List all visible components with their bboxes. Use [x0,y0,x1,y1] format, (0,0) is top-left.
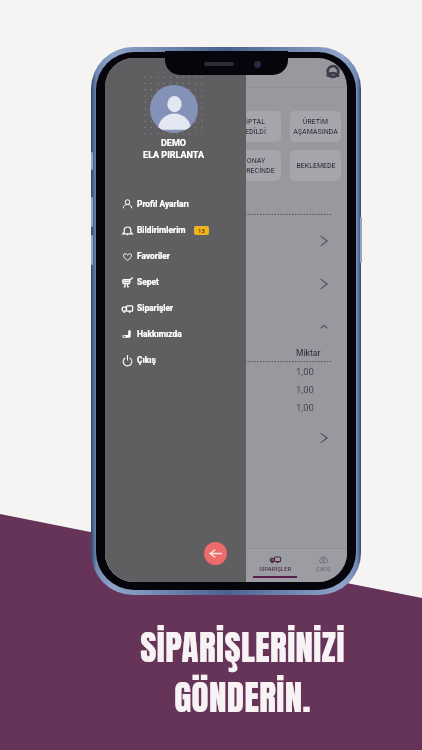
other: Genişlet [321,236,327,246]
staticText: Favoriler [137,251,170,261]
staticText: Miktar [296,348,321,358]
staticText: SİPARİŞLER [259,565,292,572]
button[interactable]: ONAY BEKLİYOR [111,111,161,142]
button[interactable]: ÜRETİM AŞAMASINDA [290,111,341,142]
staticText: 1,00 [296,384,314,395]
button[interactable]: Çıkış [105,347,246,373]
button[interactable]: ONAY SÜRECİNDE [230,150,281,181]
button[interactable]: Bildirimlerim [105,217,246,243]
button[interactable]: Sepet [105,269,246,295]
button[interactable]: BEKLEMEDE [290,150,341,181]
staticText: Sepet [137,277,159,287]
button[interactable]: Favoriler [105,243,246,269]
staticText: İPTAL EDİLDİ [245,118,266,135]
button[interactable]: Daralt [105,305,347,348]
button[interactable]: Genişlet [105,416,347,459]
staticText: SİPARİŞLERİNİZİ [140,621,345,674]
staticText: DEMO [105,138,244,149]
button[interactable]: HAZIRLANIYOR [170,111,221,142]
staticText: ONAY SÜRECİNDE [237,157,275,174]
button[interactable]: SEPET [203,549,251,582]
button[interactable]: KARGODA [170,150,221,181]
staticText: GÖNDERİN. [174,671,311,724]
button[interactable]: ÇIKIŞ [299,549,347,582]
button[interactable]: Siparişler [105,295,246,321]
staticText: ÜRETİM AŞAMASINDA [293,118,338,135]
staticText: ELA PIRLANTA [105,150,244,161]
staticText: ONAY BEKLİYOR [120,118,152,135]
button[interactable]: Geri [204,542,227,565]
staticText: Çıkış [137,355,156,365]
button[interactable]: Genişlet [105,219,347,262]
other: Genişlet [321,433,327,443]
staticText: BEKLEMEDE [296,162,336,170]
button[interactable]: Hakkımızda [105,321,246,347]
button[interactable]: İPTAL EDİLDİ [230,111,281,142]
staticText: ÇIKIŞ [316,565,331,572]
button[interactable]: TAMAMLANDI [111,150,161,181]
button[interactable]: ANA SAYFA [105,549,154,582]
button[interactable]: Genişlet [105,262,347,305]
button[interactable]: Profil Ayarları [105,191,246,217]
staticText: 1,00 [296,366,314,377]
button[interactable]: Profil [324,64,341,81]
staticText: 13 [198,227,205,234]
staticText: Hakkımızda [137,329,182,339]
staticText: Bildirimlerim [137,225,186,235]
other: Daralt [321,322,327,332]
other: Genişlet [321,279,327,289]
staticText: Profil Ayarları [137,199,189,209]
staticText: HAZIRLANIYOR [171,123,221,131]
staticText: Siparişler [137,303,174,313]
button[interactable]: SİPARİŞLER [251,549,299,582]
staticText: 1,00 [296,402,314,413]
